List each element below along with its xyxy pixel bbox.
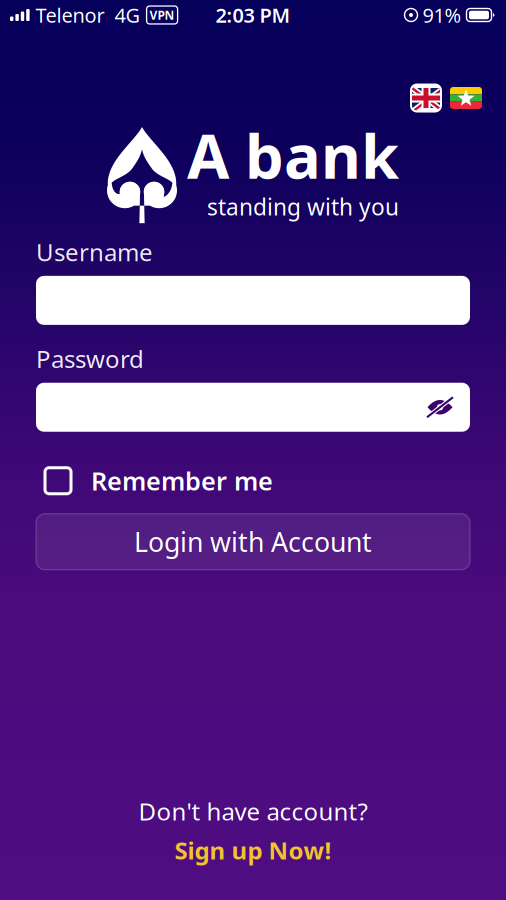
button[interactable]: Show password <box>426 395 470 419</box>
staticText: 2:03 PM <box>215 2 290 28</box>
staticText: Username <box>36 236 153 268</box>
staticText: Login with Account <box>134 524 372 559</box>
staticText: A bank <box>187 114 399 196</box>
button[interactable]: Remember me <box>36 464 470 498</box>
staticText: Sign up Now! <box>174 834 331 866</box>
staticText: standing with you <box>207 192 399 222</box>
button[interactable]: Myanmar language <box>450 87 482 109</box>
button[interactable]: English language <box>410 86 442 110</box>
staticText: 91% <box>422 2 461 28</box>
staticText: 4G <box>115 2 141 28</box>
button[interactable]: Login with Account <box>36 514 470 570</box>
staticText: Remember me <box>91 464 273 497</box>
staticText: Don't have account? <box>138 795 367 827</box>
staticText: Password <box>36 343 144 375</box>
button[interactable]: Sign up Now! <box>174 834 331 866</box>
staticText: VPN <box>150 7 175 23</box>
staticText: Telenor <box>36 2 105 28</box>
